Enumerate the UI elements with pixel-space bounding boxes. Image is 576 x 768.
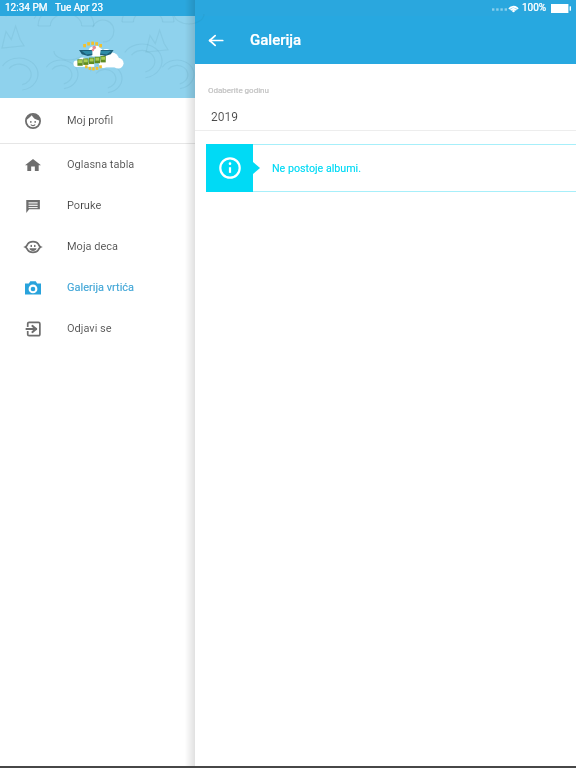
button[interactable]: Ne postoje albumi. [206, 144, 576, 192]
staticText: Galerija vrtića [67, 281, 135, 294]
staticText: Poruke [67, 199, 102, 212]
button[interactable]: Poruke [0, 185, 195, 226]
staticText: 12:34 PM [5, 2, 48, 14]
staticText: Galerija [250, 31, 302, 49]
button[interactable]: Moj profil [0, 98, 195, 143]
staticText: Moj profil [67, 114, 114, 127]
staticText: 2019 [211, 110, 238, 124]
staticText: Odaberite godinu [208, 86, 269, 95]
button[interactable]: Galerija vrtića [0, 267, 195, 308]
staticText: Tue Apr 23 [55, 2, 104, 14]
staticText: Moja deca [67, 240, 118, 253]
staticText: 100% [522, 2, 547, 14]
button[interactable]: Back [195, 16, 236, 64]
button[interactable]: 2019 [195, 103, 576, 130]
staticText: 12:34 PM [5, 2, 48, 14]
staticText: Odjavi se [67, 322, 112, 335]
staticText: Tue Apr 23 [55, 2, 104, 14]
button[interactable]: Moja deca [0, 226, 195, 267]
button[interactable]: Oglasna tabla [0, 144, 195, 185]
button[interactable]: Odjavi se [0, 308, 195, 349]
staticText: Oglasna tabla [67, 158, 135, 171]
staticText: Ne postoje albumi. [272, 162, 362, 175]
